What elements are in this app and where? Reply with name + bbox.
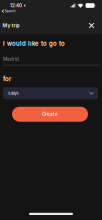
button[interactable]: 3 days [3,87,98,99]
staticText: My trip [2,22,19,28]
button[interactable]: Create [12,107,88,122]
staticText: I would like to go to [3,40,65,47]
staticText: Madrid [3,56,19,62]
staticText: 3 days [7,91,18,96]
button[interactable]: Close [86,20,97,31]
staticText: 12:40 [10,3,22,8]
staticText: Search [5,9,16,13]
staticText: for [3,75,11,83]
staticText: Create [42,111,58,117]
